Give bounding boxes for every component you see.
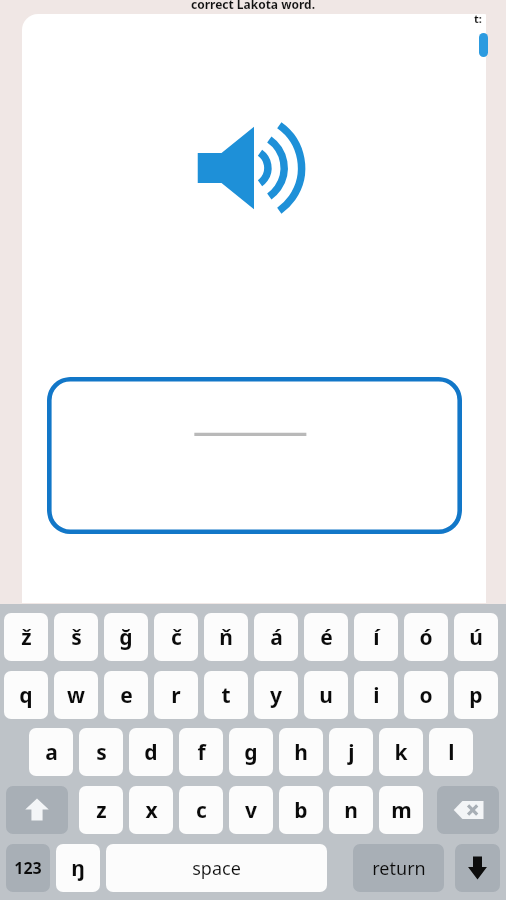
staticText: s xyxy=(96,738,107,767)
staticText: g xyxy=(244,738,258,767)
staticText: v xyxy=(245,796,257,825)
button[interactable]: ŋ xyxy=(56,844,100,892)
staticText: k xyxy=(394,738,408,767)
button[interactable]: j xyxy=(329,728,373,776)
button[interactable]: x xyxy=(129,786,173,834)
staticText: w xyxy=(67,681,85,710)
button[interactable]: í xyxy=(354,613,398,661)
staticText: l xyxy=(448,738,455,767)
button[interactable]: f xyxy=(179,728,223,776)
button[interactable]: r xyxy=(154,671,198,719)
button[interactable]: a xyxy=(29,728,73,776)
button[interactable]: b xyxy=(279,786,323,834)
staticText: t: xyxy=(474,11,482,26)
button[interactable]: v xyxy=(229,786,273,834)
button[interactable]: ň xyxy=(204,613,248,661)
button[interactable]: ú xyxy=(454,613,498,661)
button[interactable]: ó xyxy=(404,613,448,661)
button[interactable]: p xyxy=(454,671,498,719)
button[interactable]: g xyxy=(229,728,273,776)
button[interactable]: Shift xyxy=(6,786,68,834)
staticText: n xyxy=(344,796,358,825)
button[interactable]: é xyxy=(304,613,348,661)
staticText: x xyxy=(145,796,158,825)
staticText: y xyxy=(270,681,282,710)
button[interactable]: q xyxy=(4,671,48,719)
staticText: space xyxy=(192,856,241,881)
staticText: a xyxy=(45,738,58,767)
staticText: h xyxy=(294,738,308,767)
button[interactable]: Backspace xyxy=(437,786,499,834)
button[interactable]: h xyxy=(279,728,323,776)
staticText: p xyxy=(469,681,483,710)
button[interactable]: l xyxy=(429,728,473,776)
button[interactable]: k xyxy=(379,728,423,776)
staticText: é xyxy=(320,623,333,652)
staticText: ğ xyxy=(119,623,133,652)
button[interactable]: e xyxy=(104,671,148,719)
button[interactable] xyxy=(47,377,462,534)
staticText: t xyxy=(221,681,231,710)
staticText: m xyxy=(391,796,412,825)
button[interactable]: space xyxy=(106,844,327,892)
button[interactable]: y xyxy=(254,671,298,719)
button[interactable]: o xyxy=(404,671,448,719)
staticText: return xyxy=(372,856,426,881)
staticText: b xyxy=(294,796,308,825)
button[interactable]: š xyxy=(54,613,98,661)
button[interactable]: d xyxy=(129,728,173,776)
staticText: d xyxy=(144,738,158,767)
button[interactable]: z xyxy=(79,786,123,834)
button[interactable]: 123 xyxy=(6,844,50,892)
staticText: j xyxy=(348,738,355,767)
button[interactable]: i xyxy=(354,671,398,719)
button[interactable]: w xyxy=(54,671,98,719)
staticText: ŋ xyxy=(71,854,85,883)
staticText: correct Lakota word. xyxy=(0,0,506,12)
staticText: o xyxy=(419,681,433,710)
button[interactable]: Play audio xyxy=(196,124,312,212)
button[interactable]: s xyxy=(79,728,123,776)
button[interactable]: ž xyxy=(4,613,48,661)
staticText: i xyxy=(373,681,380,710)
button[interactable]: Hide keyboard xyxy=(455,844,500,892)
staticText: ž xyxy=(21,623,32,652)
staticText: q xyxy=(19,681,33,710)
staticText: č xyxy=(171,623,182,652)
button[interactable]: m xyxy=(379,786,423,834)
staticText: e xyxy=(120,681,133,710)
button[interactable]: return xyxy=(353,844,444,892)
staticText: š xyxy=(71,623,82,652)
staticText: ó xyxy=(419,623,433,652)
button[interactable]: t xyxy=(204,671,248,719)
staticText: u xyxy=(319,681,333,710)
button[interactable]: n xyxy=(329,786,373,834)
staticText: ň xyxy=(219,623,233,652)
staticText: í xyxy=(373,623,380,652)
button[interactable]: č xyxy=(154,613,198,661)
staticText: ú xyxy=(469,623,483,652)
staticText: 123 xyxy=(14,857,42,879)
button[interactable]: c xyxy=(179,786,223,834)
button[interactable]: ğ xyxy=(104,613,148,661)
staticText: á xyxy=(270,623,283,652)
button[interactable]: á xyxy=(254,613,298,661)
staticText: r xyxy=(171,681,181,710)
button[interactable]: u xyxy=(304,671,348,719)
staticText: f xyxy=(197,738,206,767)
staticText: c xyxy=(196,796,207,825)
staticText: z xyxy=(96,796,107,825)
